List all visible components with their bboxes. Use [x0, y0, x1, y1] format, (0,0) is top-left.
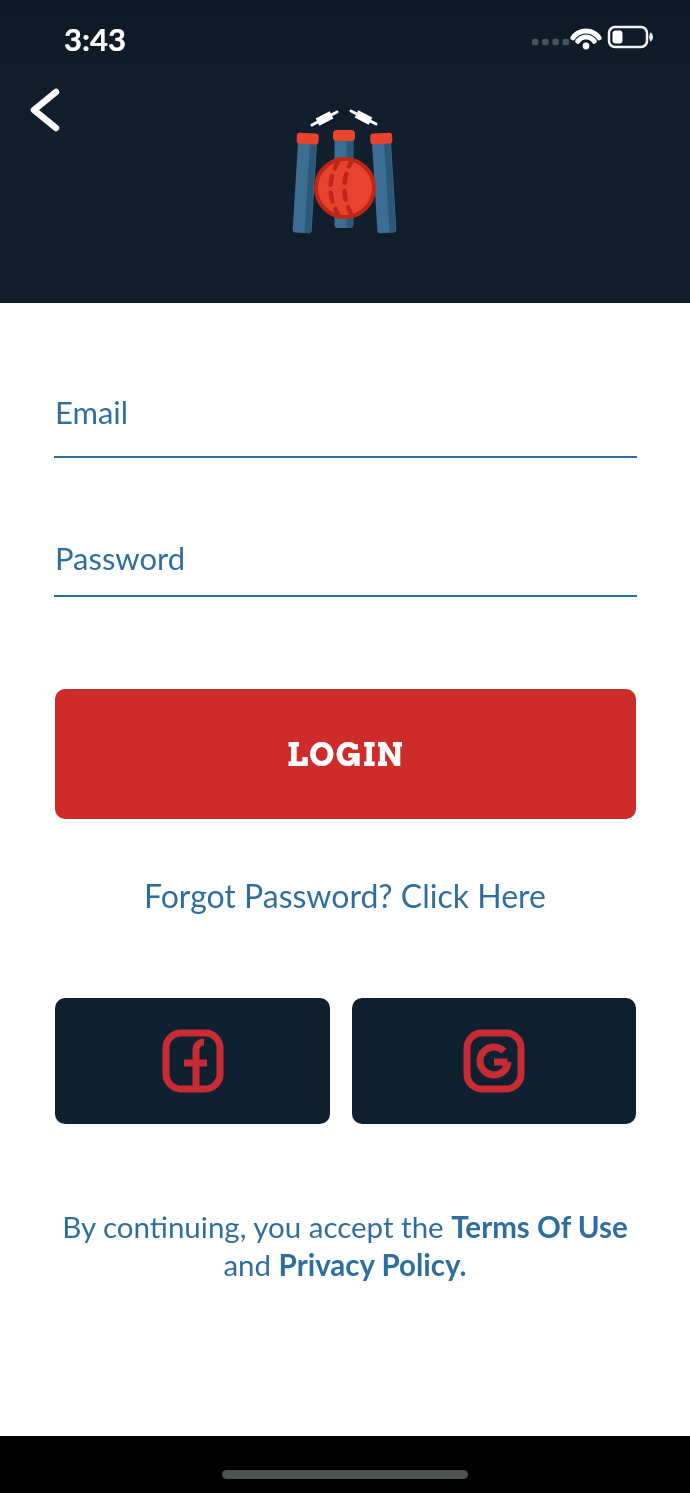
staticText: Forgot Password? Click Here — [144, 876, 546, 914]
button[interactable]: By continuing, you accept the Terms Of U… — [0, 1209, 690, 1283]
staticText: 3:43 — [64, 20, 126, 57]
button[interactable] — [16, 80, 76, 140]
button[interactable]: LOGIN — [55, 689, 636, 819]
staticText: Password — [55, 539, 186, 576]
button[interactable] — [352, 998, 636, 1124]
staticText: LOGIN — [287, 735, 405, 774]
staticText: By continuing, you accept the Terms Of U… — [62, 1209, 628, 1283]
staticText: Email — [55, 393, 129, 430]
button[interactable]: Forgot Password? Click Here — [0, 872, 690, 918]
button[interactable] — [55, 998, 330, 1124]
